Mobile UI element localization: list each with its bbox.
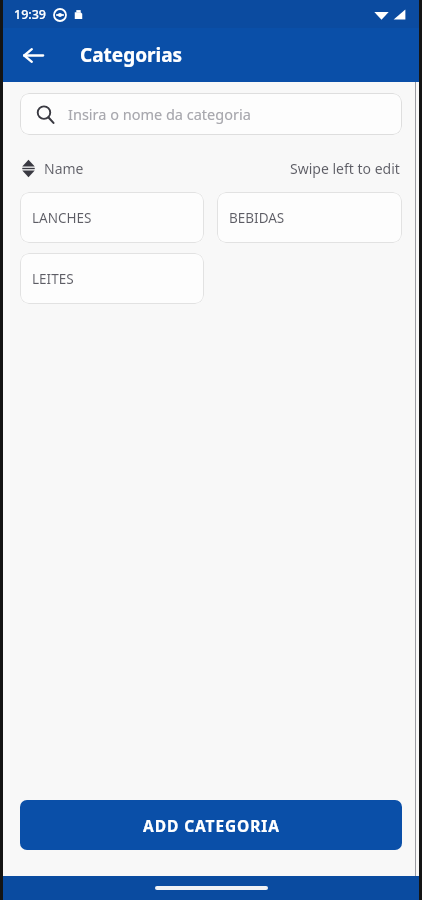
button[interactable]: Swipe left to edit — [290, 159, 400, 178]
staticText: ADD CATEGORIA — [143, 815, 280, 836]
button[interactable]: LEITES — [20, 253, 204, 304]
button[interactable]: LANCHES — [20, 192, 204, 243]
button[interactable]: BEBIDAS — [217, 192, 402, 243]
button[interactable]: Name — [22, 159, 84, 178]
staticText: LANCHES — [32, 209, 92, 227]
staticText: BEBIDAS — [229, 209, 285, 227]
staticText: Insira o nome da categoria — [68, 104, 251, 124]
button[interactable]: Back — [12, 34, 54, 76]
staticText: Categorias — [80, 42, 183, 68]
staticText: 19:39 — [14, 6, 47, 23]
button[interactable]: Insira o nome da categoria — [20, 93, 402, 135]
staticText: Name — [44, 159, 84, 178]
staticText: LEITES — [32, 270, 74, 288]
button[interactable]: ADD CATEGORIA — [20, 800, 402, 850]
